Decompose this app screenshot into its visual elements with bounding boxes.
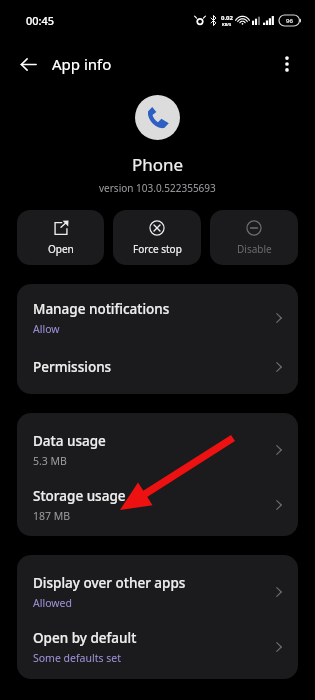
- staticText: Display over other apps: [33, 574, 186, 592]
- button[interactable]: Disable: [210, 210, 298, 265]
- staticText: Disable: [237, 242, 272, 256]
- button[interactable]: Back: [12, 48, 44, 80]
- staticText: Some defaults set: [33, 651, 121, 665]
- button[interactable]: Data usage: [17, 413, 298, 474]
- staticText: Allow: [33, 322, 60, 336]
- button[interactable]: Open: [17, 210, 104, 265]
- staticText: Storage usage: [33, 487, 126, 505]
- staticText: Force stop: [133, 242, 182, 256]
- staticText: Data usage: [33, 432, 106, 450]
- staticText: Open: [48, 242, 74, 256]
- staticText: App info: [52, 54, 112, 74]
- button[interactable]: Permissions: [17, 340, 298, 394]
- staticText: Allowed: [33, 596, 72, 610]
- button[interactable]: Force stop: [113, 210, 201, 265]
- staticText: Manage notifications: [33, 300, 170, 318]
- button[interactable]: Open by default: [17, 616, 298, 678]
- button[interactable]: Display over other apps: [17, 555, 298, 616]
- button[interactable]: More options: [272, 49, 302, 79]
- staticText: KB/S: [222, 22, 232, 27]
- staticText: 96: [286, 17, 293, 25]
- staticText: 00:45: [26, 13, 55, 28]
- staticText: 0.02: [221, 14, 233, 22]
- button[interactable]: Manage notifications: [17, 284, 298, 340]
- staticText: version 103.0.522355693: [99, 181, 216, 195]
- staticText: 5.3 MB: [33, 454, 67, 468]
- staticText: Phone: [132, 153, 184, 176]
- button[interactable]: Storage usage: [17, 474, 298, 536]
- staticText: Permissions: [33, 358, 112, 376]
- staticText: 187 MB: [33, 509, 71, 523]
- staticText: Open by default: [33, 629, 137, 647]
